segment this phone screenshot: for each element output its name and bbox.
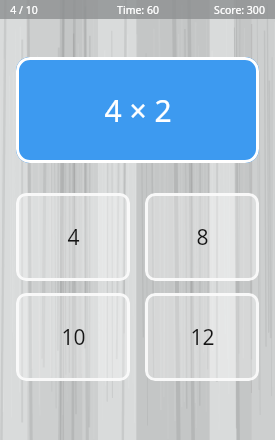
staticText: 4 bbox=[67, 223, 80, 252]
button[interactable]: 10 bbox=[16, 293, 130, 381]
staticText: Time: 60 bbox=[117, 3, 159, 17]
button[interactable]: Question 4 times 2 bbox=[16, 57, 259, 163]
button[interactable]: 12 bbox=[145, 293, 259, 381]
button[interactable]: 8 bbox=[145, 193, 259, 281]
staticText: 12 bbox=[190, 323, 215, 352]
staticText: 8 bbox=[196, 223, 209, 252]
staticText: Score: 300 bbox=[214, 3, 265, 17]
button[interactable]: 4 bbox=[16, 193, 130, 281]
staticText: 4 / 10 bbox=[10, 3, 38, 17]
staticText: 10 bbox=[61, 323, 86, 352]
staticText: 4 × 2 bbox=[104, 90, 172, 131]
